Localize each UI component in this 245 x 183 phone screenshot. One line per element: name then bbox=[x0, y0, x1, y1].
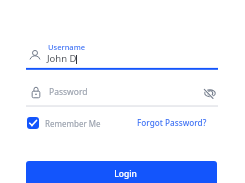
button[interactable]: Remember Me bbox=[27, 117, 101, 129]
staticText: Forgot Password? bbox=[137, 117, 207, 128]
button[interactable]: Show password bbox=[201, 84, 218, 101]
button[interactable]: Login bbox=[26, 161, 217, 183]
staticText: Login bbox=[114, 168, 137, 180]
button[interactable] bbox=[26, 38, 218, 70]
button[interactable]: Forgot Password? bbox=[137, 115, 207, 129]
staticText: Username bbox=[48, 42, 86, 52]
staticText: Password bbox=[49, 86, 88, 98]
staticText: John D bbox=[47, 52, 77, 65]
button[interactable] bbox=[26, 83, 218, 105]
staticText: Remember Me bbox=[45, 118, 101, 129]
